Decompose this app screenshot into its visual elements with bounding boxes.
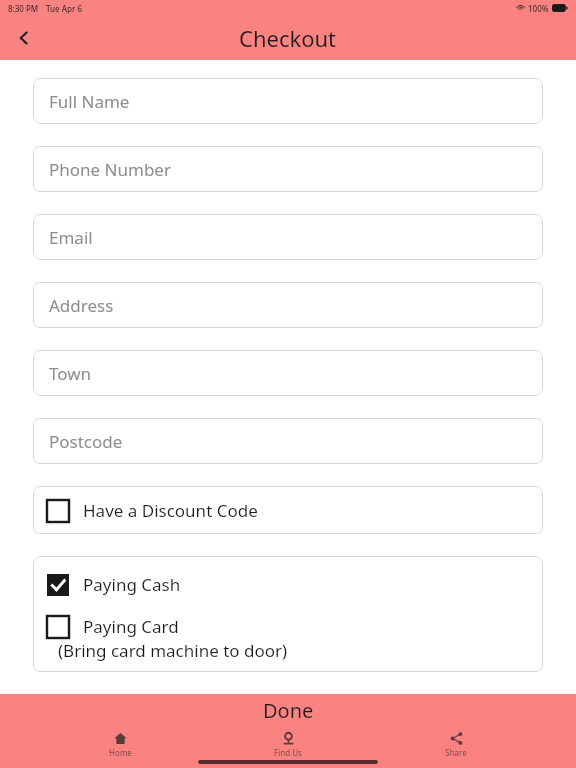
button[interactable]: Full Name [33, 78, 543, 124]
staticText: 100% [528, 3, 549, 14]
staticText: Town [49, 362, 92, 385]
button[interactable]: Back [6, 20, 42, 56]
staticText: Paying Card [83, 615, 179, 638]
staticText: Postcode [49, 430, 123, 453]
button[interactable]: Have a Discount Code [33, 486, 543, 534]
button[interactable]: Phone Number [33, 146, 543, 192]
staticText: (Bring card machine to door) [58, 639, 288, 662]
button[interactable]: Email [33, 214, 543, 260]
button[interactable]: Done [0, 694, 576, 727]
staticText: Done [263, 697, 314, 724]
staticText: Have a Discount Code [83, 499, 258, 522]
staticText: Tue Apr 6 [46, 3, 83, 14]
staticText: Share [445, 747, 467, 758]
staticText: Phone Number [49, 158, 171, 181]
staticText: Full Name [49, 90, 130, 113]
staticText: Checkout [239, 23, 337, 53]
button[interactable]: Paying Cash [33, 573, 543, 596]
staticText: Home [109, 747, 132, 758]
button[interactable]: Postcode [33, 418, 543, 464]
button[interactable]: Share [408, 727, 504, 758]
staticText: Paying Cash [83, 573, 181, 596]
button[interactable]: Town [33, 350, 543, 396]
button[interactable]: Find Us [240, 727, 336, 758]
staticText: Address [49, 294, 114, 317]
button[interactable]: Paying Card [33, 615, 543, 662]
button[interactable]: Home [72, 727, 168, 758]
button[interactable]: Address [33, 282, 543, 328]
staticText: Find Us [274, 747, 302, 758]
staticText: 8:30 PM [8, 3, 39, 14]
staticText: Email [49, 226, 93, 249]
